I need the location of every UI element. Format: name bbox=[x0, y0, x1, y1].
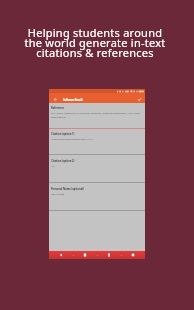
staticText: Reference bbox=[51, 106, 65, 110]
staticText: Citation (option 2) bbox=[51, 159, 75, 163]
staticText: APA (Tharlo Yarwick (2017) Computer Soft… bbox=[51, 112, 142, 119]
button[interactable]: Save bbox=[134, 93, 145, 103]
staticText: Personal Notes (optional) bbox=[51, 187, 84, 191]
staticText: "type paraphrased material here" (3.4.1) bbox=[51, 138, 94, 141]
staticText: Free Storage bbox=[51, 193, 65, 196]
button[interactable]: Personal Notes (optional) bbox=[49, 183, 145, 211]
button[interactable]: Citation (option 1) bbox=[49, 129, 145, 155]
staticText: n/a bbox=[51, 165, 55, 168]
staticText: Helping students around the world genera… bbox=[24, 25, 166, 60]
button[interactable]: Recent apps bbox=[103, 251, 115, 259]
button[interactable]: Screenshot bbox=[127, 251, 139, 259]
button[interactable]: Navigate up bbox=[49, 93, 61, 103]
button[interactable]: Home bbox=[79, 251, 91, 259]
button[interactable]: Reference bbox=[49, 103, 145, 129]
button[interactable]: Citation (option 2) bbox=[49, 155, 145, 183]
staticText: Software Result bbox=[63, 98, 83, 101]
button[interactable]: Back bbox=[55, 251, 67, 259]
staticText: Citation (option 1) bbox=[51, 132, 75, 136]
